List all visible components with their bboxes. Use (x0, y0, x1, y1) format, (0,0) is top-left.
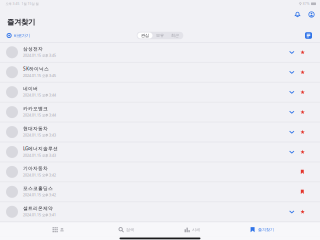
button[interactable]: 시세 (185, 223, 251, 237)
staticText: 오후 3:45 1월 15일 월 (5, 1, 38, 6)
button[interactable]: SK하이닉스 (0, 62, 320, 82)
button[interactable]: 최근 (167, 33, 182, 38)
staticText: 즐겨찾기 (258, 227, 274, 232)
button[interactable]: 현대자동차 (0, 122, 320, 142)
staticText: 현대자동차 (23, 125, 48, 131)
staticText: 2024.01.15 오후 3:45 (23, 73, 56, 78)
button[interactable]: 내 정보 (308, 11, 315, 18)
staticText: 검색 (126, 227, 134, 232)
button[interactable]: 셀트리온제약 (0, 202, 320, 221)
staticText: 최근 (171, 33, 179, 38)
button[interactable]: 네이버 (0, 82, 320, 102)
staticText: 기아자동차 (23, 165, 48, 171)
staticText: 관심 (141, 33, 149, 38)
staticText: 네이버 (23, 86, 38, 92)
button[interactable]: 보유 (152, 33, 167, 38)
button[interactable]: 관심 (137, 33, 152, 38)
staticText: 2024.01.15 오후 3:43 (23, 153, 56, 158)
button[interactable]: 삼성전자 (0, 43, 320, 62)
staticText: 카카오뱅크 (23, 106, 48, 112)
staticText: SK하이닉스 (23, 65, 49, 72)
staticText: 2024.01.15 오후 3:42 (23, 173, 56, 177)
staticText: 포스코홀딩스 (23, 185, 53, 191)
button[interactable]: 포스코홀딩스 (0, 182, 320, 201)
staticText: 2024.01.15 오후 3:44 (23, 93, 56, 98)
button[interactable]: 알림 (294, 11, 301, 18)
staticText: 2024.01.15 오후 3:45 (23, 53, 56, 58)
staticText: 2024.01.15 오후 3:42 (23, 193, 56, 197)
button[interactable]: 카카오뱅크 (0, 102, 320, 122)
staticText: 즐겨찾기 (7, 17, 35, 27)
button[interactable]: LG에너지솔루션 (0, 142, 320, 162)
staticText: 바로가기 (14, 33, 30, 38)
staticText: 2024.01.15 오후 3:43 (23, 133, 56, 137)
staticText: 시세 (192, 227, 200, 232)
button[interactable]: 즐겨찾기 (251, 223, 317, 237)
staticText: 홈 (60, 227, 64, 232)
button[interactable]: 검색 (119, 223, 185, 237)
button[interactable]: 바로가기 (7, 31, 30, 40)
staticText: 셀트리온제약 (23, 205, 53, 211)
staticText: 87% (302, 1, 310, 6)
staticText: 2024.01.15 오후 3:41 (23, 213, 56, 217)
button[interactable]: 기아자동차 (0, 162, 320, 181)
staticText: 보유 (156, 33, 164, 38)
staticText: 2024.01.15 오후 3:44 (23, 113, 56, 118)
staticText: 삼성전자 (23, 46, 43, 52)
button[interactable]: 홈 (53, 223, 119, 237)
staticText: LG에너지솔루션 (23, 145, 58, 152)
button[interactable]: 보기 전환 (305, 32, 312, 39)
